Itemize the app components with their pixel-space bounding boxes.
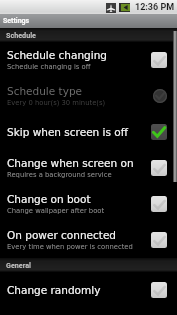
button[interactable]: Change on boot <box>0 186 177 222</box>
staticText: Schedule type <box>7 85 83 97</box>
staticText: Schedule <box>6 31 36 39</box>
staticText: Requires a background service <box>7 171 112 179</box>
button[interactable]: Schedule type <box>0 78 177 114</box>
button[interactable]: Change randomly <box>0 272 177 308</box>
staticText: Change wallpaper after boot <box>7 207 105 215</box>
button[interactable]: Change when screen on <box>0 150 177 186</box>
staticText: Change randomly <box>7 284 101 296</box>
staticText: Every time when power is connected <box>7 243 133 251</box>
button[interactable]: Schedule changing <box>0 42 177 78</box>
button[interactable]: On power connected <box>0 222 177 258</box>
staticText: Settings <box>3 17 30 25</box>
staticText: On power connected <box>7 229 117 241</box>
staticText: Change when screen on <box>7 157 134 169</box>
staticText: Schedule changing is off <box>7 63 91 71</box>
staticText: 12:36 PM <box>135 2 175 13</box>
button[interactable]: Skip when screen is off <box>0 114 177 150</box>
staticText: Schedule changing <box>7 49 108 61</box>
staticText: General <box>6 261 31 269</box>
staticText: Skip when screen is off <box>7 126 128 138</box>
staticText: Every 0 hour(s) 30 minute(s) <box>7 99 106 107</box>
staticText: Change on boot <box>7 193 91 205</box>
